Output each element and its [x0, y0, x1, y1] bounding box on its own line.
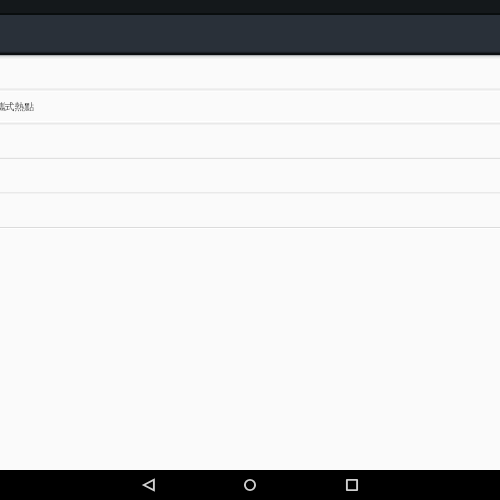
- button[interactable]: Settings item: [0, 124, 500, 159]
- button[interactable]: Settings item: [0, 226, 500, 261]
- button[interactable]: Home: [229, 470, 270, 500]
- button[interactable]: Settings item: [0, 55, 500, 89]
- button[interactable]: 攜式熱點: [0, 89, 500, 124]
- button[interactable]: Back: [128, 470, 169, 500]
- button[interactable]: Recent apps: [331, 470, 372, 500]
- staticText: 攜式熱點: [0, 101, 35, 113]
